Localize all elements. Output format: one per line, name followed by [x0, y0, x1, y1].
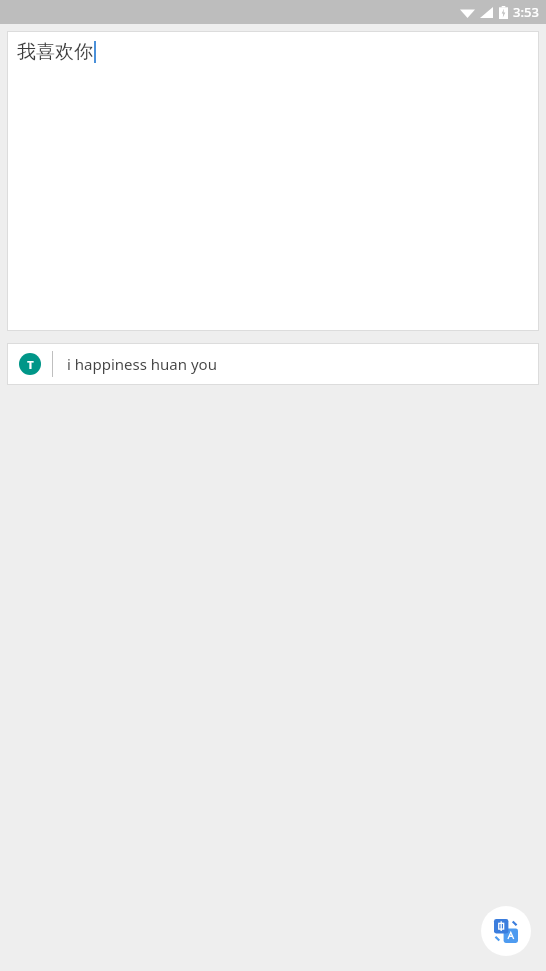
button[interactable]: 我喜欢你: [7, 31, 539, 331]
staticText: 我喜欢你: [17, 40, 93, 64]
staticText: T: [27, 357, 34, 372]
button[interactable]: Translate: [481, 906, 531, 956]
button[interactable]: T: [7, 343, 539, 385]
staticText: 3:53: [513, 3, 539, 21]
staticText: i happiness huan you: [67, 354, 217, 374]
